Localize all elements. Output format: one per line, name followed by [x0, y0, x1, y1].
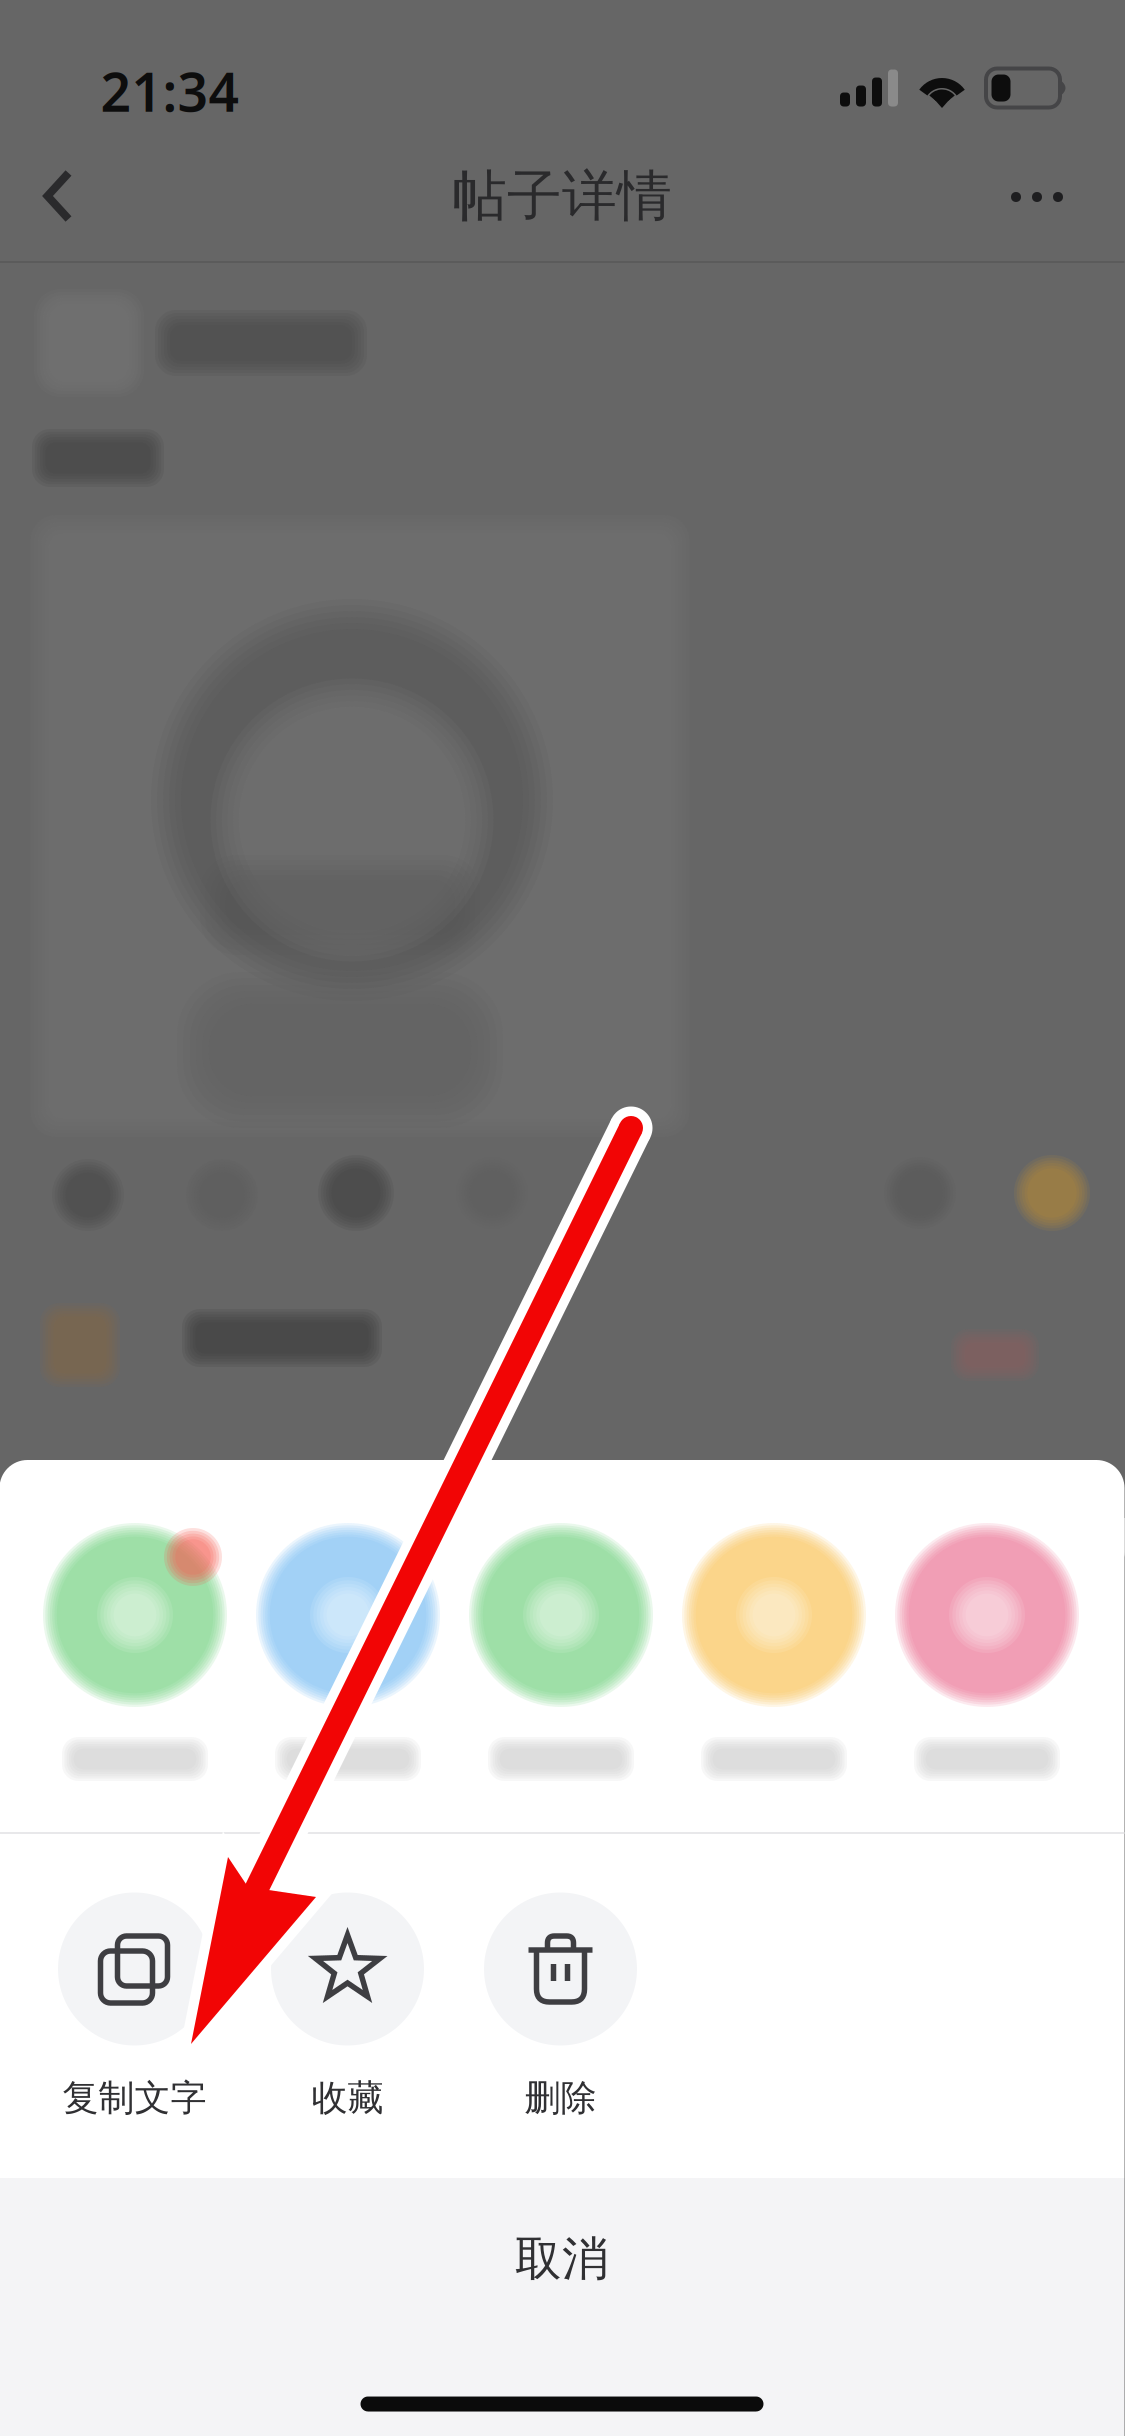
- staticText: 复制文字: [62, 2076, 206, 2120]
- button[interactable]: 复制文字: [28, 1892, 241, 2152]
- staticText: 帖子详情: [452, 162, 672, 229]
- button[interactable]: More options: [977, 142, 1097, 252]
- button[interactable]: Share: [242, 1517, 455, 1787]
- button[interactable]: Share: [881, 1517, 1094, 1787]
- button[interactable]: 取消: [0, 2178, 1124, 2340]
- button[interactable]: Share: [668, 1517, 881, 1787]
- button[interactable]: Back: [8, 141, 108, 251]
- button[interactable]: Share: [29, 1517, 242, 1787]
- staticText: 收藏: [311, 2076, 383, 2120]
- button[interactable]: Share: [455, 1517, 668, 1787]
- button[interactable]: 删除: [454, 1892, 667, 2152]
- staticText: 删除: [524, 2076, 596, 2120]
- staticText: 21:34: [100, 56, 239, 126]
- button[interactable]: 收藏: [241, 1892, 454, 2152]
- staticText: 取消: [515, 2230, 609, 2288]
